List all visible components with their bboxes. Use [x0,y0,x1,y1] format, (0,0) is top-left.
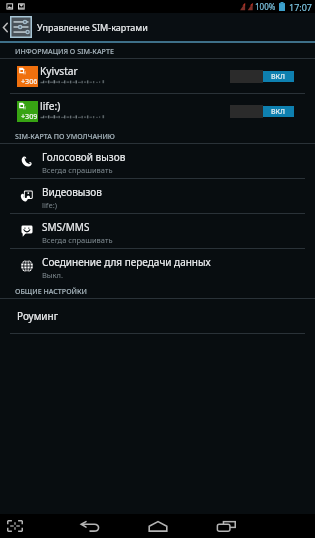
staticText: 17:07 [289,1,313,13]
button[interactable]: Голосовой вызов [0,144,315,178]
staticText: +306 [21,76,38,86]
button[interactable]: Back [76,514,104,538]
staticText: Всегда спрашивать [42,235,113,245]
button[interactable]: Соединение для передачи данных [0,249,315,283]
button[interactable]: +309 [0,94,315,128]
staticText: Видеовызов [42,185,102,199]
staticText: Всегда спрашивать [42,165,113,175]
staticText: Выкл. [42,270,63,280]
staticText: Роуминг [17,309,59,323]
staticText: Управление SIM-картами [37,21,148,33]
button[interactable]: Видеовызов [0,179,315,213]
staticText: SMS/MMS [42,220,90,234]
staticText: Kyivstar [40,64,78,78]
staticText: +309 [21,111,38,121]
button[interactable]: Роуминг [0,299,315,333]
button[interactable]: SMS/MMS [0,214,315,248]
button[interactable]: +306 [0,59,315,93]
staticText: life:) [40,99,61,113]
staticText: SIM-КАРТА ПО УМОЛЧАНИЮ [15,131,115,141]
staticText: life:) [42,200,57,210]
staticText: ВКЛ [271,72,286,82]
staticText: Соединение для передачи данных [42,255,211,269]
staticText: ОБЩИЕ НАСТРОЙКИ [15,286,88,296]
staticText: Голосовой вызов [42,150,126,164]
button[interactable]: SIM enabled switch [230,105,294,118]
staticText: ВКЛ [271,107,286,117]
button[interactable]: Recent apps [212,514,240,538]
button[interactable]: Back [0,13,32,41]
button[interactable]: Home [144,514,172,538]
button[interactable]: SIM enabled switch [230,70,294,83]
staticText: ИНФОРМАЦИЯ О SIM-КАРТЕ [15,46,114,56]
staticText: 100% [255,1,276,12]
button[interactable]: Screenshot [5,518,25,534]
